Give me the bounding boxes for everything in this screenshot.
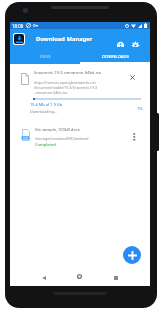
button[interactable] [117,42,124,49]
staticText: file-sample_100kB.docx [35,127,80,133]
staticText: DOWNLOADS [102,54,129,60]
staticText: https://mirrors.springlanetworks.net /li… [34,80,97,95]
staticText: /storage/emulated/0/Download [35,136,89,141]
staticText: Completed [35,142,56,147]
button[interactable] [123,246,141,264]
button[interactable]: FILES [10,50,80,64]
staticText: Downloading... [30,109,58,114]
button[interactable] [130,75,135,80]
staticText: Download Manager [36,35,93,43]
button[interactable]: DOWNLOADS [80,50,150,64]
staticText: FILES [40,54,51,60]
staticText: 15.4 Mb of 1.9 Gb [30,102,63,107]
button[interactable]: file-sample_100kB.docx [10,123,150,151]
button[interactable]: linuxmint-19.3-cinnamon-64bit.iso [10,64,150,127]
button[interactable] [132,42,139,49]
button[interactable] [77,274,82,279]
staticText: linuxmint-19.3-cinnamon-64bit.iso [34,70,102,76]
staticText: 18:06 [12,23,24,29]
button[interactable] [133,133,136,141]
staticText: 1% [137,106,143,111]
button[interactable] [42,276,46,280]
